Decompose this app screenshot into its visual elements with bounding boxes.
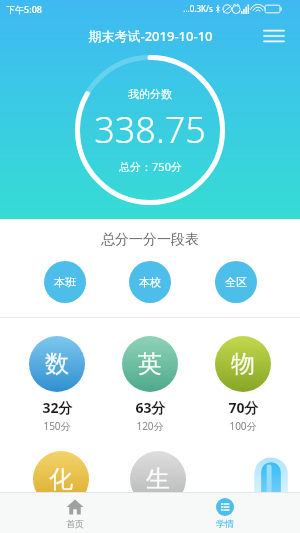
staticText: 数: [45, 349, 69, 379]
button[interactable]: 首页: [0, 493, 150, 533]
staticText: 期末考试-2019-10-10: [88, 27, 213, 45]
button[interactable]: 英: [114, 336, 186, 433]
button[interactable]: 本校: [129, 261, 171, 303]
staticText: 化: [49, 464, 73, 494]
button[interactable]: 生: [122, 451, 194, 507]
staticText: 本校: [139, 275, 161, 289]
staticText: 物: [231, 349, 255, 379]
staticText: 总分一分一段表: [101, 231, 199, 249]
staticText: 120分: [136, 419, 164, 433]
button[interactable]: Menu: [248, 17, 300, 55]
button[interactable]: 化: [25, 451, 97, 507]
staticText: 70分: [228, 398, 259, 417]
staticText: 总分：750分: [119, 159, 182, 174]
button[interactable]: Highlight: [254, 451, 288, 531]
staticText: 英: [138, 349, 162, 379]
staticText: 338.75: [94, 105, 206, 154]
staticText: 全区: [225, 275, 247, 289]
staticText: 下午5:08: [6, 3, 42, 15]
button[interactable]: 数: [21, 336, 93, 433]
staticText: 学情: [216, 518, 234, 529]
staticText: 32分: [42, 398, 73, 417]
button[interactable]: 物: [207, 336, 279, 433]
button[interactable]: 学情: [150, 493, 300, 533]
staticText: 本班: [54, 275, 76, 289]
button[interactable]: 本班: [44, 261, 86, 303]
staticText: 100分: [229, 419, 257, 433]
staticText: 63分: [135, 398, 166, 417]
button[interactable]: 全区: [215, 261, 257, 303]
staticText: 150分: [43, 419, 71, 433]
staticText: 我的分数: [128, 87, 172, 101]
staticText: 生: [146, 464, 170, 494]
staticText: ...0.3K/s: [183, 3, 213, 14]
staticText: 首页: [66, 518, 84, 529]
